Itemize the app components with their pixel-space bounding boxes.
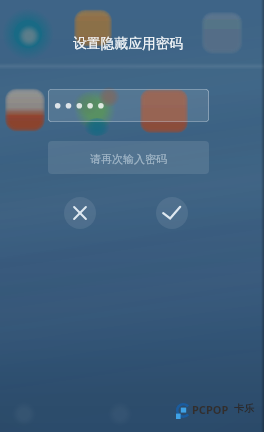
staticText: 请再次输入密码 <box>90 152 167 166</box>
button[interactable] <box>48 89 209 122</box>
button[interactable]: 确定 <box>156 197 188 229</box>
staticText: 卡乐 <box>234 402 254 415</box>
staticText: 设置隐藏应用密码 <box>73 35 184 52</box>
button[interactable]: 取消 <box>64 197 96 229</box>
staticText: PCPOP <box>192 402 229 417</box>
button[interactable]: 请再次输入密码 <box>48 141 209 174</box>
